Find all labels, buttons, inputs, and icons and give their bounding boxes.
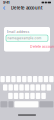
staticText: name@example.com <box>8 36 42 40</box>
staticText: Delete account <box>11 5 43 11</box>
staticText: Email address <box>7 30 30 34</box>
staticText: 9:41 <box>3 0 10 5</box>
staticText: Delete account <box>30 44 54 49</box>
button[interactable]: Back <box>1 5 7 11</box>
button[interactable]: Delete account <box>30 44 54 49</box>
